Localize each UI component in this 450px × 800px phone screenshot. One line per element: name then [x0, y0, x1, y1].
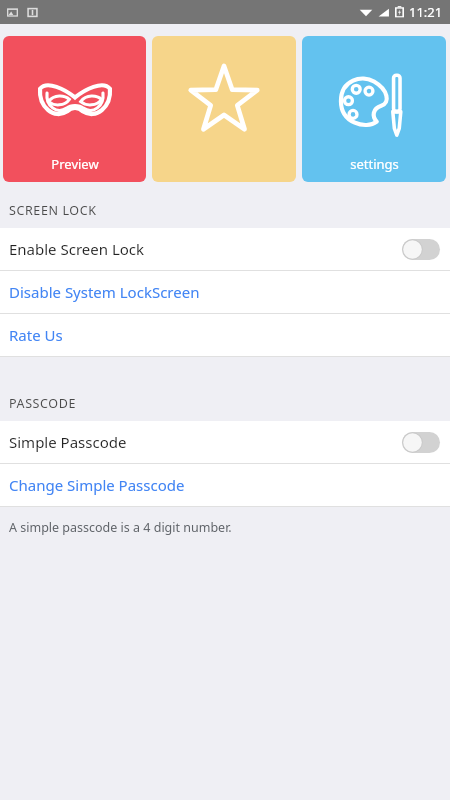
staticText: 11:21 [409, 3, 443, 21]
staticText: A simple passcode is a 4 digit number. [9, 519, 232, 536]
staticText: Rate Us [9, 325, 63, 345]
staticText: SCREEN LOCK [9, 202, 97, 219]
button[interactable]: settings [302, 36, 446, 182]
button[interactable]: Disable System LockScreen [0, 271, 450, 313]
staticText: Preview [51, 155, 99, 173]
button[interactable]: Toggle [402, 239, 440, 260]
staticText: Disable System LockScreen [9, 282, 200, 302]
staticText: settings [350, 155, 399, 173]
staticText: Enable Screen Lock [9, 239, 145, 259]
button[interactable]: Favorites [152, 36, 296, 182]
button[interactable]: Simple Passcode [0, 421, 450, 463]
staticText: Simple Passcode [9, 432, 127, 452]
button[interactable]: Toggle [402, 432, 440, 453]
button[interactable]: Enable Screen Lock [0, 228, 450, 270]
staticText: PASSCODE [9, 395, 76, 412]
button[interactable]: Preview [3, 36, 146, 182]
button[interactable]: Change Simple Passcode [0, 464, 450, 506]
staticText: Change Simple Passcode [9, 475, 185, 495]
button[interactable]: Rate Us [0, 314, 450, 356]
